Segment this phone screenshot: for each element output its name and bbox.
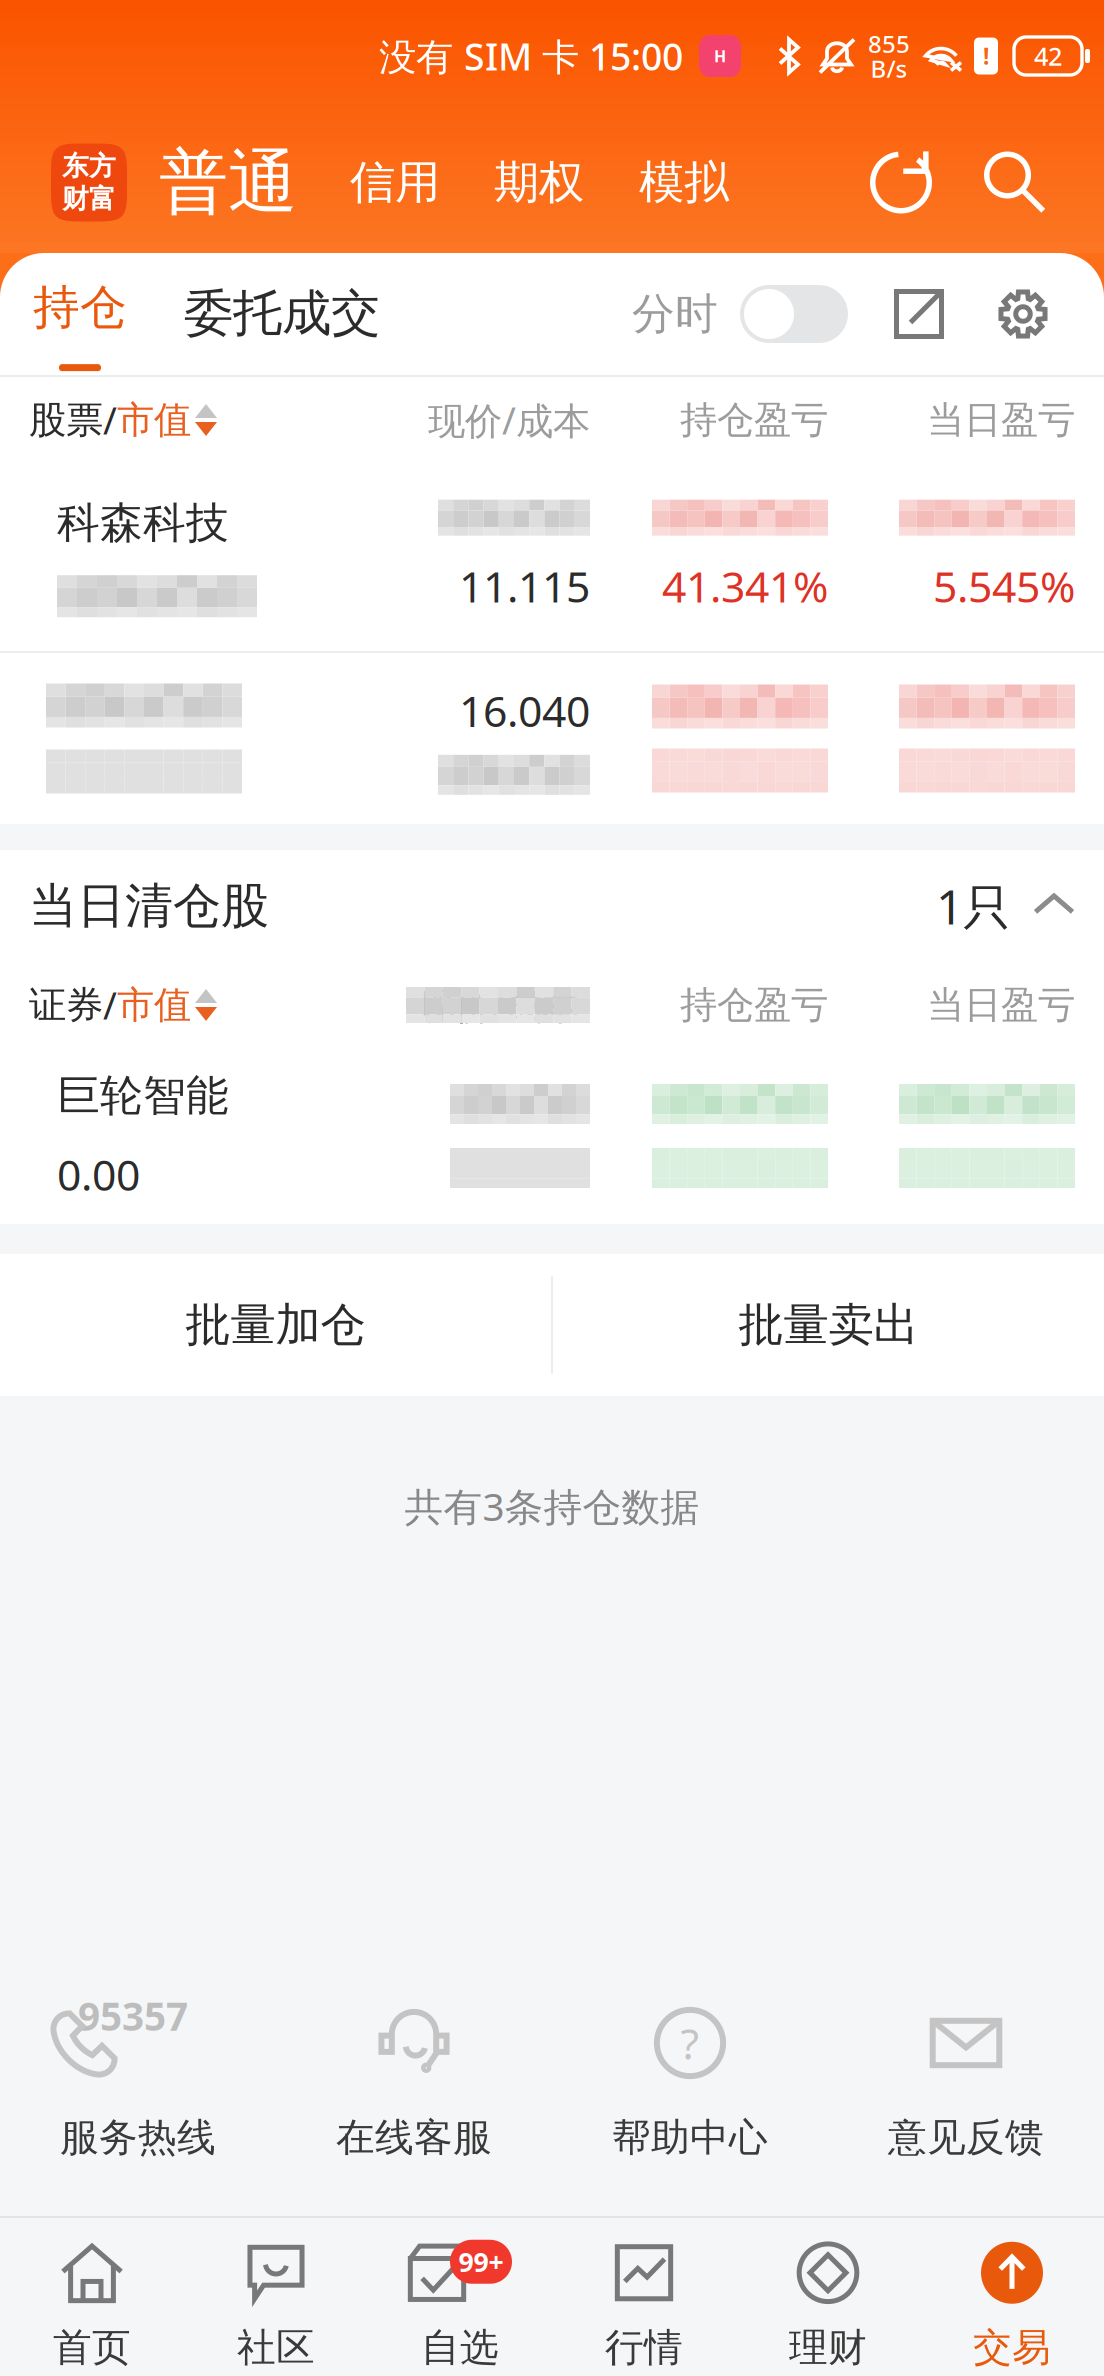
button[interactable]: 95357 (0, 1990, 276, 2216)
staticText: 首页 (53, 2324, 131, 2371)
staticText: 当日盈亏 (927, 397, 1075, 443)
staticText: 95357 (78, 1990, 188, 2041)
staticText: 11.115 (459, 558, 590, 614)
staticText: 42 (1034, 39, 1062, 73)
button[interactable]: 首页 (0, 2217, 184, 2376)
staticText: 信用 (350, 155, 440, 210)
button[interactable]: 普通 (159, 140, 297, 225)
button[interactable]: 交易 (920, 2217, 1104, 2376)
button[interactable]: 批量卖出 (553, 1254, 1104, 1396)
staticText: 0.00 (57, 1146, 140, 1203)
staticText: 16.040 (459, 682, 590, 739)
staticText: 理财 (789, 2324, 867, 2371)
button[interactable]: 行情 (552, 2217, 736, 2376)
staticText: 期权 (494, 155, 584, 210)
button[interactable]: 分享 (894, 253, 944, 375)
button[interactable]: 批量加仓 (0, 1254, 551, 1396)
staticText: 共有3条持仓数据 (404, 1480, 699, 1532)
button[interactable]: 东方 (51, 143, 127, 221)
button[interactable]: 意见反馈 (828, 1990, 1104, 2216)
staticText: 股票 (29, 397, 103, 443)
staticText: 委托成交 (184, 283, 380, 344)
button[interactable]: 刷新 (870, 151, 932, 213)
button[interactable]: 期权 (494, 155, 584, 210)
button[interactable]: 持仓 (32, 253, 128, 375)
staticText: 当日清仓股 (29, 876, 269, 935)
button[interactable]: 委托成交 (182, 253, 382, 375)
button[interactable]: 科森科技 (0, 463, 1104, 651)
staticText: 1只 (936, 874, 1011, 938)
staticText: / (103, 980, 117, 1030)
staticText: 持仓盈亏 (680, 982, 828, 1028)
staticText: 服务热线 (60, 2114, 216, 2161)
staticText: 普通 (159, 140, 297, 225)
staticText: 帮助中心 (612, 2114, 768, 2161)
staticText: 证券 (29, 982, 103, 1028)
staticText: H (714, 45, 726, 67)
staticText: 批量加仓 (185, 1297, 365, 1353)
staticText: 5.545% (933, 558, 1075, 614)
staticText: 模拟 (639, 155, 729, 210)
staticText: ! (983, 41, 989, 71)
staticText: 科森科技 (57, 497, 229, 549)
button[interactable]: 设置 (998, 253, 1048, 375)
staticText: 在线客服 (336, 2114, 492, 2161)
staticText: 41.341% (662, 558, 828, 614)
staticText: 市值 (117, 397, 191, 443)
staticText: 855 (868, 28, 910, 59)
staticText: 东方 (62, 150, 116, 182)
staticText: 社区 (237, 2324, 315, 2371)
staticText: 自选 (421, 2324, 499, 2371)
staticText: 财富 (62, 182, 116, 215)
button[interactable]: 当日清仓股 (0, 850, 1104, 962)
staticText: 批量卖出 (738, 1297, 918, 1353)
button[interactable]: 分时 (632, 253, 848, 375)
staticText: 现价/成本 (417, 980, 579, 1030)
staticText: 现价/成本 (428, 395, 590, 445)
staticText: 持仓盈亏 (680, 397, 828, 443)
staticText: / (103, 395, 117, 445)
staticText: 当日盈亏 (927, 982, 1075, 1028)
staticText: B/s (870, 52, 907, 84)
staticText: 没有 SIM 卡 15:00 (379, 31, 683, 81)
button[interactable]: 16.040 (0, 653, 1104, 824)
button[interactable]: 在线客服 (276, 1990, 552, 2216)
button[interactable]: 理财 (736, 2217, 920, 2376)
button[interactable]: 99+ (368, 2217, 552, 2376)
button[interactable]: 搜索 (984, 151, 1046, 213)
staticText: 交易 (973, 2324, 1051, 2371)
staticText: 意见反馈 (888, 2114, 1044, 2161)
staticText: 巨轮智能 (57, 1069, 229, 1122)
staticText: 99+ (458, 2244, 503, 2279)
staticText: ? (680, 2015, 699, 2071)
button[interactable]: 信用 (350, 155, 440, 210)
staticText: 分时 (632, 288, 718, 340)
staticText: 市值 (117, 982, 191, 1028)
staticText: 行情 (605, 2324, 683, 2371)
button[interactable]: 巨轮智能 (0, 1048, 1104, 1224)
button[interactable]: 社区 (184, 2217, 368, 2376)
button[interactable]: 模拟 (639, 155, 729, 210)
button[interactable]: ? (552, 1990, 828, 2216)
staticText: 持仓 (33, 279, 127, 336)
